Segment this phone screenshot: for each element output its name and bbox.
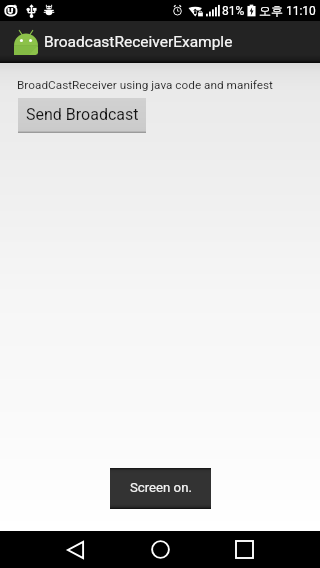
button[interactable]: Home <box>136 531 184 568</box>
staticText: 81% <box>222 4 245 18</box>
button[interactable]: Recent apps <box>220 531 268 568</box>
staticText: Screen on. <box>130 480 192 495</box>
button[interactable]: Back <box>51 531 99 568</box>
button[interactable]: Send Broadcast <box>18 98 146 133</box>
staticText: 오후 11:10 <box>259 3 316 18</box>
staticText: Send Broadcast <box>26 105 139 124</box>
staticText: BroadCastReceiver using java code and ma… <box>17 78 273 92</box>
staticText: BroadcastReceiverExample <box>44 33 233 51</box>
